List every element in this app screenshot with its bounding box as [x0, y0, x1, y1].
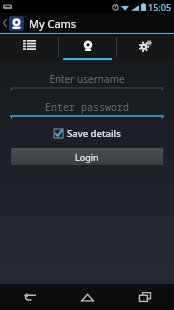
- button[interactable]: Cameras: [59, 34, 116, 60]
- staticText: My Cams: [29, 16, 77, 31]
- button[interactable]: Back: [0, 284, 58, 310]
- staticText: 15:05: [148, 1, 172, 13]
- button[interactable]: My Cams: [0, 13, 174, 33]
- button[interactable]: Recents: [116, 284, 174, 310]
- staticText: Enter username: [49, 72, 125, 86]
- button[interactable]: Save details: [11, 127, 163, 140]
- button[interactable]: Home: [58, 284, 116, 310]
- button[interactable]: Login: [11, 148, 163, 165]
- button[interactable]: List: [0, 34, 58, 60]
- staticText: Login: [75, 151, 99, 163]
- button[interactable]: Enter password: [11, 98, 163, 119]
- staticText: Save details: [67, 127, 121, 140]
- button[interactable]: Settings: [117, 34, 174, 60]
- button[interactable]: Enter username: [11, 70, 163, 91]
- staticText: Enter password: [45, 100, 129, 114]
